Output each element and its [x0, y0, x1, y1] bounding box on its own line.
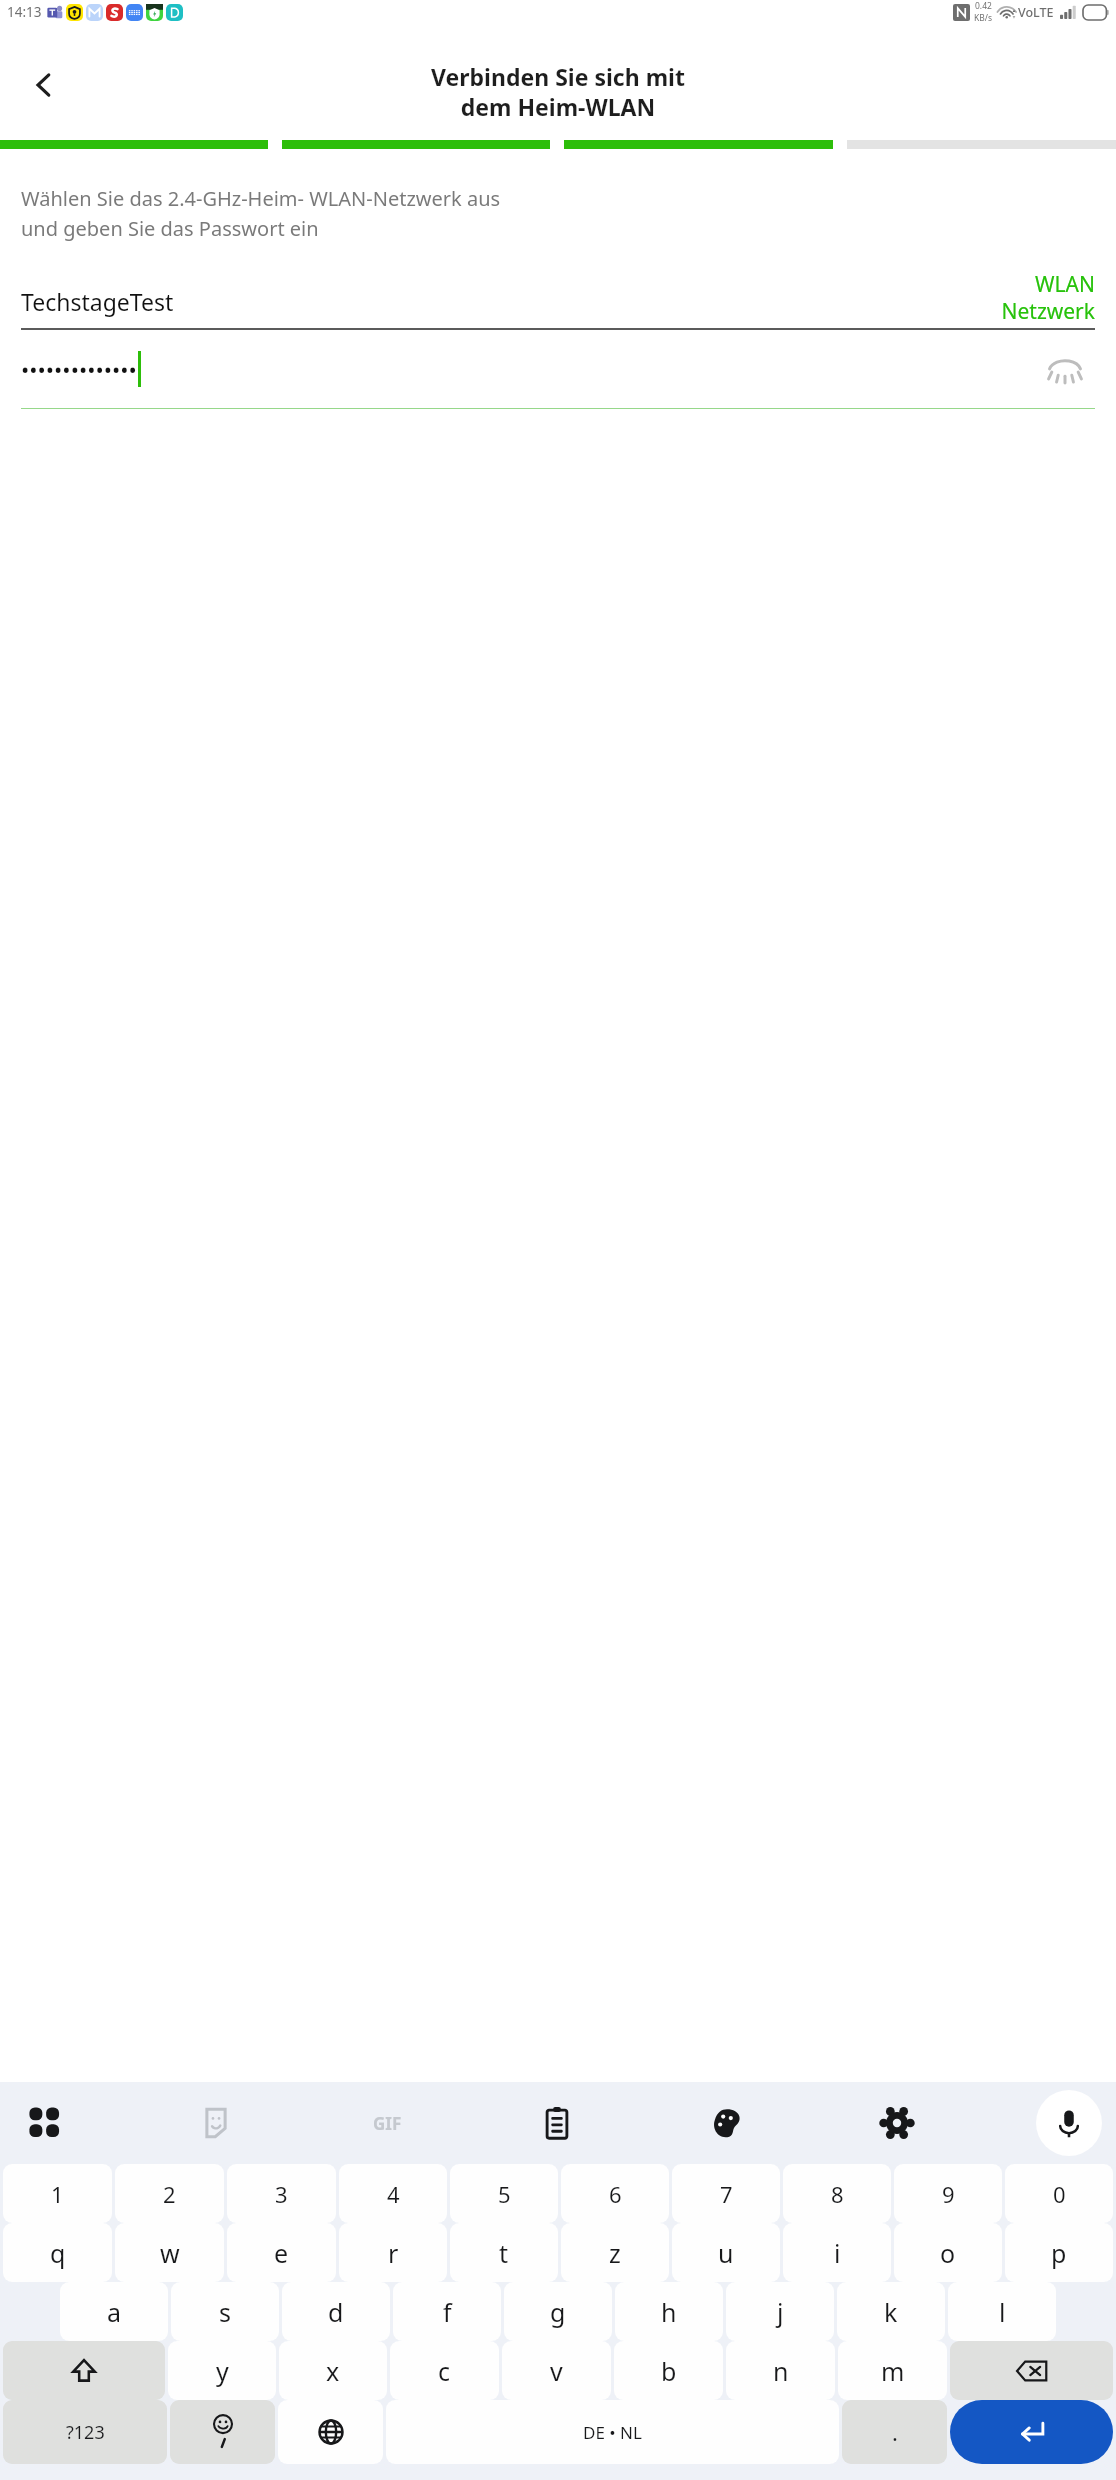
staticText: 9 — [942, 2179, 955, 2209]
staticText: Verbinden Sie sich mit dem Heim-WLAN — [431, 61, 685, 123]
button[interactable]: Emoji — [170, 2400, 275, 2464]
button[interactable]: k — [837, 2282, 945, 2341]
staticText: DE • NL — [583, 2421, 642, 2444]
staticText: n — [773, 2354, 789, 2388]
staticText: h — [661, 2295, 677, 2329]
button[interactable]: Einstellungen — [866, 2092, 928, 2154]
staticText: r — [388, 2236, 399, 2270]
button[interactable]: c — [390, 2341, 499, 2400]
button[interactable]: Tastatur-Layout — [14, 2092, 76, 2154]
button[interactable]: v — [502, 2341, 611, 2400]
button[interactable]: 9 — [894, 2164, 1002, 2223]
button[interactable]: f — [393, 2282, 501, 2341]
staticText: Wählen Sie das 2.4-GHz-Heim- WLAN-Netzwe… — [21, 185, 501, 242]
button[interactable]: •••••••••••••• — [21, 330, 1095, 408]
staticText: . — [892, 2417, 898, 2447]
button[interactable]: g — [504, 2282, 612, 2341]
staticText: x — [326, 2354, 340, 2388]
button[interactable]: n — [726, 2341, 835, 2400]
button[interactable]: Design — [696, 2092, 758, 2154]
button[interactable]: l — [948, 2282, 1056, 2341]
button[interactable]: a — [60, 2282, 168, 2341]
staticText: 14:13 — [7, 3, 42, 21]
button[interactable]: h — [615, 2282, 723, 2341]
button[interactable]: z — [561, 2223, 669, 2282]
staticText: m — [881, 2354, 905, 2388]
button[interactable]: y — [168, 2341, 276, 2400]
button[interactable]: Umschalt — [3, 2341, 165, 2400]
button[interactable]: j — [726, 2282, 834, 2341]
button[interactable]: Passwort anzeigen — [1035, 339, 1095, 399]
button[interactable]: Sprache wechseln — [278, 2400, 383, 2464]
staticText: 4 — [387, 2179, 400, 2209]
staticText: l — [999, 2295, 1006, 2329]
staticText: 0.42 — [975, 0, 992, 12]
button[interactable]: 1 — [3, 2164, 112, 2223]
button[interactable]: Sticker — [185, 2092, 247, 2154]
staticText: VoLTE — [1018, 4, 1054, 21]
button[interactable]: q — [3, 2223, 112, 2282]
button[interactable]: Eingabe — [950, 2400, 1113, 2464]
staticText: f — [443, 2295, 452, 2329]
button[interactable]: ?123 — [3, 2400, 167, 2464]
staticText: 2 — [163, 2179, 176, 2209]
staticText: e — [274, 2236, 289, 2270]
staticText: v — [550, 2354, 563, 2388]
button[interactable]: DE • NL — [386, 2400, 839, 2464]
button[interactable]: w — [115, 2223, 224, 2282]
staticText: c — [438, 2354, 451, 2388]
staticText: 3 — [275, 2179, 288, 2209]
staticText: TechstageTest — [21, 286, 174, 317]
button[interactable]: Zurück — [16, 57, 72, 113]
staticText: •••••••••••••• — [21, 354, 137, 384]
button[interactable]: u — [672, 2223, 780, 2282]
button[interactable]: TechstageTest — [21, 272, 1095, 330]
button[interactable]: e — [227, 2223, 336, 2282]
staticText: j — [777, 2295, 784, 2329]
staticText: w — [160, 2236, 180, 2270]
button[interactable]: . — [842, 2400, 947, 2464]
button[interactable]: Zwischenablage — [526, 2092, 588, 2154]
button[interactable]: 0 — [1005, 2164, 1113, 2223]
staticText: 7 — [720, 2179, 733, 2209]
button[interactable]: Spracheingabe — [1036, 2090, 1102, 2156]
button[interactable]: 4 — [339, 2164, 447, 2223]
staticText: t — [499, 2236, 509, 2270]
staticText: 1 — [51, 2179, 64, 2209]
button[interactable]: x — [279, 2341, 387, 2400]
staticText: s — [219, 2295, 231, 2329]
staticText: KB/s — [974, 12, 993, 24]
button[interactable]: p — [1005, 2223, 1113, 2282]
button[interactable]: t — [450, 2223, 558, 2282]
staticText: k — [884, 2295, 898, 2329]
button[interactable]: d — [282, 2282, 390, 2341]
button[interactable]: WLAN Netzwerk ändern — [975, 272, 1095, 330]
button[interactable]: b — [614, 2341, 723, 2400]
button[interactable]: r — [339, 2223, 447, 2282]
staticText: 6 — [609, 2179, 622, 2209]
staticText: u — [718, 2236, 734, 2270]
staticText: a — [107, 2295, 122, 2329]
button[interactable]: 2 — [115, 2164, 224, 2223]
button[interactable]: GIF — [356, 2092, 418, 2154]
button[interactable]: 8 — [783, 2164, 891, 2223]
button[interactable]: s — [171, 2282, 279, 2341]
button[interactable]: 3 — [227, 2164, 336, 2223]
staticText: WLAN Netzwerk ändern — [1001, 270, 1095, 328]
button[interactable]: m — [838, 2341, 947, 2400]
staticText: GIF — [373, 2112, 402, 2135]
staticText: g — [550, 2295, 566, 2329]
button[interactable]: Löschen — [950, 2341, 1113, 2400]
button[interactable]: i — [783, 2223, 891, 2282]
staticText: q — [50, 2236, 66, 2270]
button[interactable]: 7 — [672, 2164, 780, 2223]
staticText: z — [609, 2236, 621, 2270]
staticText: p — [1051, 2236, 1067, 2270]
button[interactable]: 5 — [450, 2164, 558, 2223]
button[interactable]: o — [894, 2223, 1002, 2282]
staticText: ?123 — [66, 2420, 105, 2445]
staticText: 5 — [498, 2179, 511, 2209]
staticText: y — [216, 2354, 229, 2388]
button[interactable]: 6 — [561, 2164, 669, 2223]
staticText: i — [834, 2236, 841, 2270]
